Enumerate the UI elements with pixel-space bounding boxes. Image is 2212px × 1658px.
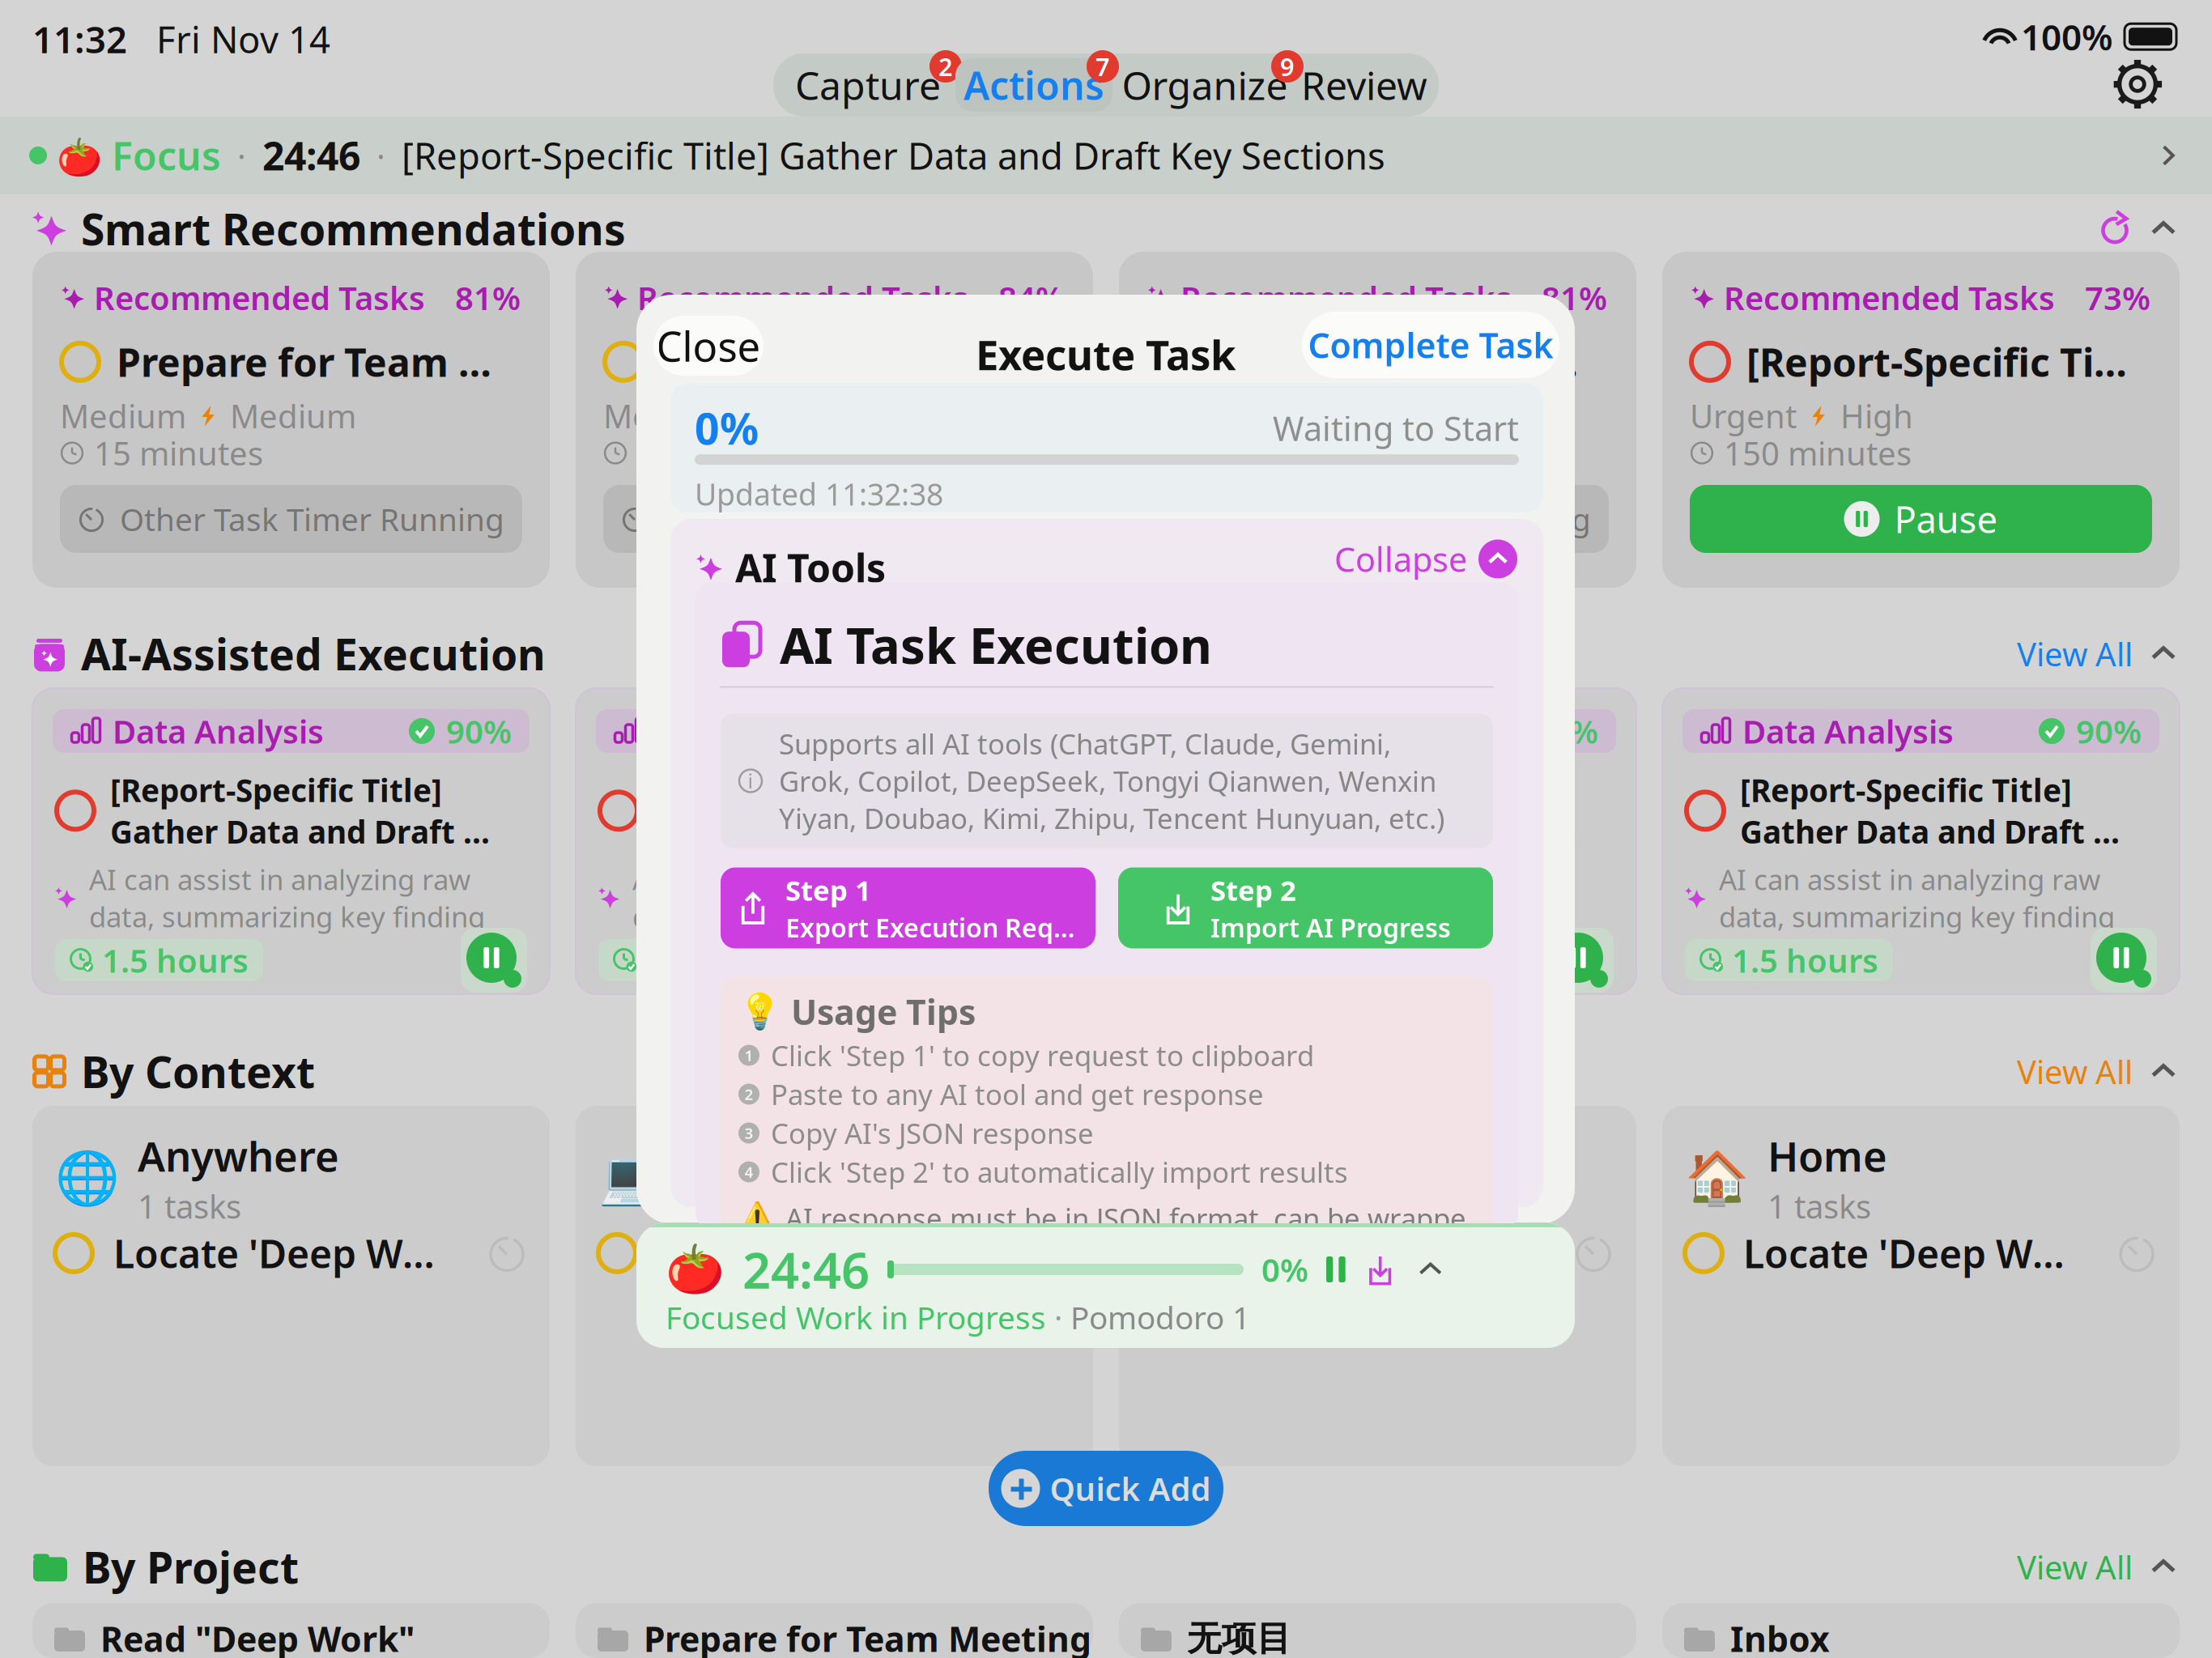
staticText: Other Task Timer Running (120, 498, 504, 540)
staticText: 81% (1542, 276, 1607, 319)
staticText: Other Task Timer Running (1206, 498, 1591, 540)
staticText: 73% (2085, 276, 2150, 319)
staticText: 💻 (598, 1148, 663, 1208)
button[interactable]: Capture (781, 58, 955, 112)
staticText: 9 (1280, 50, 1295, 83)
staticText: Execute Task (976, 327, 1236, 382)
button[interactable]: Other Task Timer Running (603, 485, 1066, 553)
staticText: · (221, 134, 262, 177)
staticText: 2 (938, 50, 953, 83)
button[interactable]: Step 1 (721, 867, 1095, 948)
staticText: AI can assist in analyzing raw data, sum… (632, 861, 1028, 935)
button[interactable]: View All (2017, 1545, 2133, 1588)
staticText: Collapse (1334, 537, 1467, 581)
staticText: Pause (1894, 495, 1998, 543)
staticText: 24:46 (262, 130, 360, 181)
button[interactable]: Collapse (1334, 537, 1517, 581)
staticText: Capture (795, 59, 941, 111)
staticText: 15 minutes (637, 432, 806, 474)
button[interactable]: Step 2 (1118, 867, 1493, 948)
button[interactable]: Collapse section (2147, 212, 2180, 245)
staticText: 🍅 (47, 131, 112, 180)
staticText: 90% (446, 710, 512, 752)
button[interactable]: Organize (1112, 58, 1297, 112)
staticText: 4 (744, 1162, 753, 1182)
button[interactable]: Collapse section (2147, 1055, 2180, 1088)
staticText: Waiting to Start (1273, 406, 1519, 450)
staticText: 1.5 hours (102, 939, 249, 982)
staticText: AI Task Execution (780, 612, 1212, 678)
staticText: Urgent (1690, 394, 1797, 437)
staticText: Close (656, 318, 761, 373)
staticText: Step 2 (1210, 871, 1296, 908)
staticText: 📞 (1142, 1148, 1206, 1208)
button[interactable]: Quick Add (989, 1451, 1223, 1526)
staticText: By Context (81, 1043, 315, 1100)
staticText: · (360, 134, 402, 177)
staticText: Locate 'Deep Work'... (657, 1227, 988, 1279)
button[interactable]: Other Task Timer Running (60, 485, 522, 553)
button[interactable]: Review (1297, 58, 1431, 112)
button[interactable]: Complete Task (1302, 312, 1559, 378)
staticText: Review (1301, 59, 1427, 111)
staticText: [Report-Specific Title] Gather Data and … (653, 769, 1053, 852)
button[interactable]: Close (653, 316, 764, 376)
staticText: Data Analysis (1742, 710, 1954, 752)
staticText: Prepare for Team Meeting (117, 336, 503, 388)
staticText: 🏠 (1685, 1148, 1750, 1208)
staticText: Medium (230, 394, 356, 437)
button[interactable]: Collapse section (2147, 637, 2180, 670)
button[interactable]: Expand timer (1415, 1254, 1446, 1285)
staticText: 11:32 (32, 15, 127, 63)
staticText: Other Task Timer Running (663, 498, 1048, 540)
staticText: 1.5 hours (645, 939, 792, 982)
button[interactable]: Pause task (1004, 928, 1070, 993)
staticText: Usage Tips (791, 989, 976, 1035)
staticText: 150 minutes (1724, 432, 1912, 474)
staticText: Prepare for Team Meeting (1203, 336, 1589, 388)
staticText: AI can assist in analyzing raw data, sum… (1176, 861, 1572, 935)
staticText: Data Analysis (113, 710, 324, 752)
staticText: 🌐 (55, 1148, 120, 1208)
staticText: [Report-Specific Title] Gather Data and … (110, 769, 509, 852)
button[interactable]: Actions (955, 58, 1112, 112)
button[interactable]: Import progress (1363, 1252, 1397, 1286)
button[interactable]: Pause task (461, 928, 527, 993)
button[interactable]: Pause timer (1326, 1256, 1345, 1282)
staticText: 15 minutes (1180, 432, 1350, 474)
staticText: 无项目 (1187, 1617, 1291, 1658)
staticText: Recommended Tasks (1180, 276, 1512, 319)
staticText: Recommended Tasks (1724, 276, 2055, 319)
staticText: 0% (1261, 1248, 1308, 1291)
staticText: View All (2017, 1545, 2133, 1588)
staticText: 24:46 (742, 1236, 870, 1302)
staticText: Recommended Tasks (94, 276, 425, 319)
staticText: Medium (60, 394, 186, 437)
button[interactable]: View All (2017, 1050, 2133, 1093)
staticText: 7 (1095, 50, 1110, 83)
staticText: Recommended Tasks (637, 276, 968, 319)
button[interactable]: Pause task (2091, 928, 2157, 993)
staticText: Anywhere (138, 1129, 339, 1183)
staticText: Locate 'Deep Work'... (113, 1227, 445, 1279)
button[interactable]: View All (2017, 632, 2133, 675)
staticText: Locate 'Deep Work'... (1200, 1227, 1531, 1279)
staticText: Complete Task (1308, 322, 1553, 368)
staticText: 15 minutes (94, 432, 263, 474)
staticText: 84% (998, 276, 1064, 319)
staticText: 2 (744, 1084, 753, 1104)
staticText: Locate 'Deep Work'... (1743, 1227, 2074, 1279)
button[interactable]: Settings (2112, 58, 2163, 110)
staticText: Prepare for Team Meeting (660, 336, 1046, 388)
staticText: Medium (1317, 394, 1443, 437)
staticText: Data Analysis (656, 710, 867, 752)
staticText: AI-Assisted Execution (81, 625, 546, 682)
button[interactable]: Pause task (1547, 928, 1614, 993)
button[interactable]: Refresh (2097, 211, 2133, 246)
button[interactable]: Other Task Timer Running (1146, 485, 1609, 553)
staticText: Copy AI's JSON response (771, 1114, 1094, 1152)
button[interactable]: Collapse section (2147, 1551, 2180, 1583)
button[interactable]: Pause (1690, 485, 2152, 553)
